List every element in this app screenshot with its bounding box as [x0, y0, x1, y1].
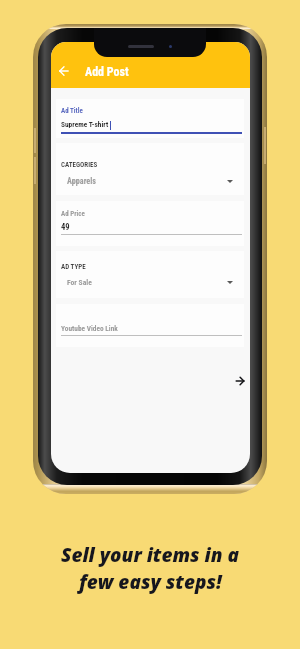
staticText: Add Post: [85, 65, 129, 79]
staticText: Ad Title: [61, 107, 83, 115]
button[interactable]: Next: [232, 373, 248, 389]
staticText: 49: [61, 222, 70, 232]
staticText: Youtube Video Link: [61, 324, 118, 333]
button[interactable]: Apparels: [56, 173, 244, 189]
staticText: Apparels: [67, 176, 96, 186]
button[interactable]: For Sale: [56, 274, 244, 290]
button[interactable]: Back: [54, 61, 74, 81]
staticText: AD TYPE: [61, 263, 86, 271]
staticText: few easy steps!: [79, 569, 222, 595]
staticText: Sell your items in a: [61, 542, 240, 568]
staticText: CATEGORIES: [61, 161, 98, 169]
staticText: Supreme T-shirt: [61, 120, 109, 129]
staticText: Ad Price: [61, 210, 85, 218]
staticText: For Sale: [67, 278, 92, 287]
